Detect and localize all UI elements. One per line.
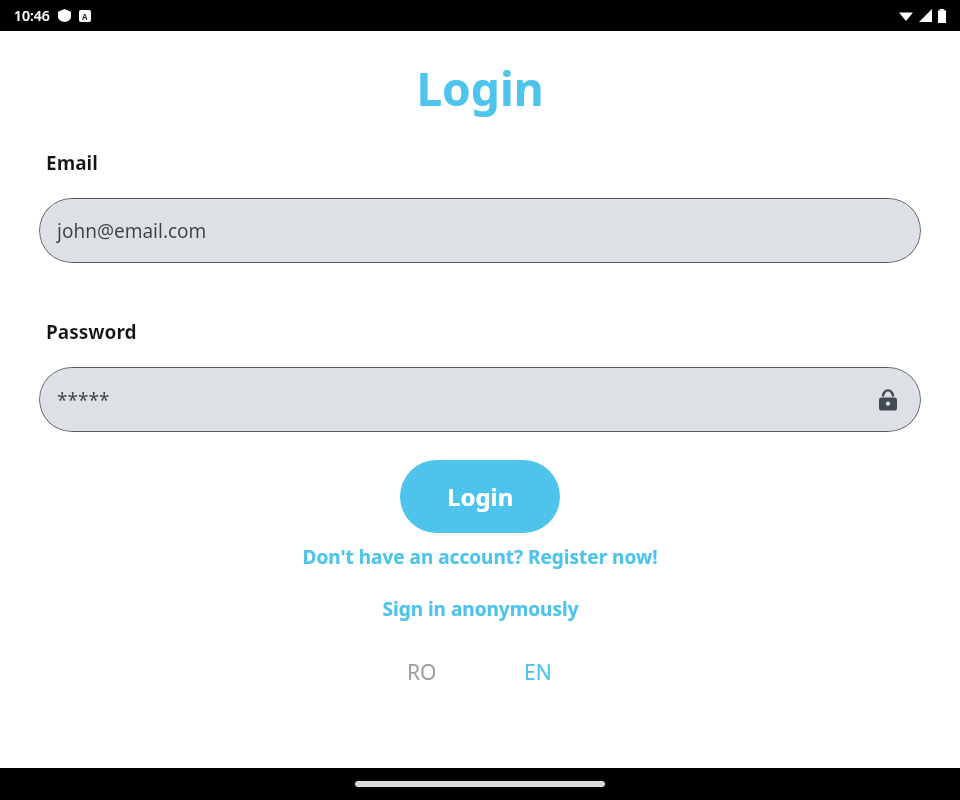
staticText: Login [447,480,514,513]
button[interactable]: EN [508,655,568,689]
staticText: Sign in anonymously [382,596,579,622]
staticText: EN [524,658,552,687]
staticText: john@email.com [57,218,207,244]
staticText: ***** [57,387,110,413]
button[interactable]: Login [400,460,560,533]
button[interactable]: RO [392,655,452,689]
button[interactable]: ***** [39,367,921,432]
button[interactable]: Sign in anonymously [0,596,960,622]
staticText: Don't have an account? Register now! [302,544,658,570]
staticText: Password [46,319,137,345]
staticText: RO [407,658,437,687]
button[interactable]: Don't have an account? Register now! [0,544,960,570]
staticText: A [82,11,88,22]
staticText: Login [0,57,960,120]
button[interactable]: Toggle password visibility [875,387,901,413]
button[interactable]: Home [355,781,605,787]
button[interactable]: john@email.com [39,198,921,263]
staticText: 10:46 [14,6,50,25]
staticText: Email [46,150,98,176]
